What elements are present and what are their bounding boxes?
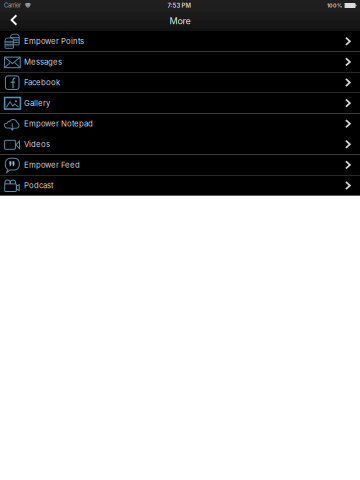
staticText: Facebook: [24, 78, 60, 87]
staticText: Empower Notepad: [24, 119, 93, 128]
staticText: Carrier: [4, 2, 21, 9]
staticText: Podcast: [24, 181, 54, 190]
staticText: Gallery: [24, 98, 50, 108]
staticText: 100%: [327, 2, 342, 9]
button[interactable]: Podcast: [0, 175, 360, 196]
button[interactable]: Back: [0, 11, 28, 31]
button[interactable]: Empower Notepad: [0, 113, 360, 134]
staticText: More: [169, 15, 190, 26]
staticText: Videos: [24, 140, 50, 149]
button[interactable]: Gallery: [0, 93, 360, 113]
button[interactable]: Messages: [0, 52, 360, 72]
staticText: Empower Points: [24, 37, 84, 46]
staticText: Empower Feed: [24, 160, 80, 170]
staticText: 7:53 PM: [167, 2, 190, 9]
button[interactable]: Empower Points: [0, 31, 360, 52]
button[interactable]: Facebook: [0, 72, 360, 93]
button[interactable]: Videos: [0, 134, 360, 155]
button[interactable]: Empower Feed: [0, 155, 360, 175]
staticText: Messages: [24, 57, 62, 67]
